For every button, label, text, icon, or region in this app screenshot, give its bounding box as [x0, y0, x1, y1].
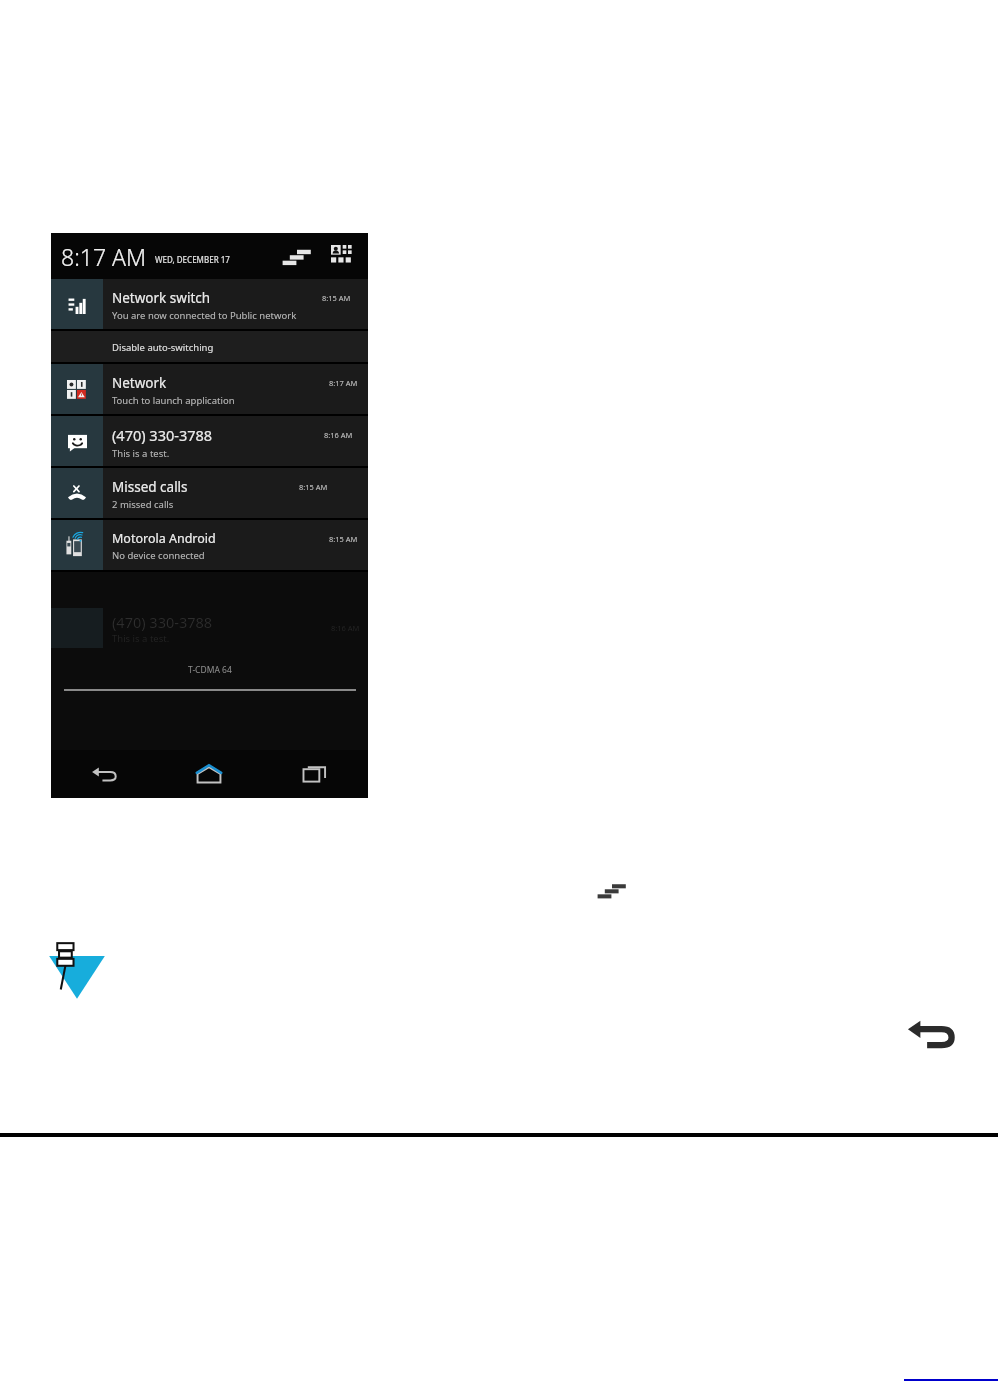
staticText: 8:16 AM [331, 623, 360, 633]
staticText: 8:15 AM [329, 534, 358, 544]
button[interactable]: (470) 330-3788 [51, 416, 368, 468]
button[interactable]: Disable auto-switching [51, 331, 368, 364]
button[interactable]: Home [156, 750, 262, 798]
staticText: 8:15 AM [299, 482, 328, 492]
staticText: Network switch [112, 289, 211, 307]
staticText: WED, DECEMBER 17 [155, 254, 230, 265]
button[interactable]: Back [51, 750, 156, 798]
staticText: (470) 330-3788 [112, 612, 213, 632]
staticText: 2 missed calls [112, 498, 174, 511]
staticText: 8:17 AM [329, 378, 358, 388]
staticText: (470) 330-3788 [112, 425, 213, 445]
button[interactable]: Network Services Client is ru [51, 364, 368, 416]
staticText: 8:17 AM [61, 241, 147, 272]
staticText: Network Services Client is ru [112, 374, 218, 392]
button[interactable]: Motorola Android eXtensions [51, 520, 368, 572]
staticText: 8:15 AM [322, 293, 351, 303]
button[interactable]: Quick settings [328, 242, 356, 270]
staticText: Motorola Android eXtensions [112, 530, 218, 547]
staticText: Touch to launch application [112, 394, 235, 407]
staticText: Missed calls [112, 478, 188, 496]
staticText: 8:16 AM [324, 430, 353, 440]
button[interactable]: Network switch [51, 279, 368, 331]
button[interactable]: Missed calls [51, 468, 368, 520]
button[interactable]: Recent apps [262, 750, 368, 798]
staticText: This is a test. [112, 632, 170, 645]
staticText: You are now connected to Public network [112, 309, 297, 322]
staticText: Disable auto-switching [112, 341, 214, 354]
button[interactable]: Clear all notifications [282, 243, 312, 269]
staticText: This is a test. [112, 447, 170, 460]
staticText: T-CDMA 64 [188, 664, 232, 676]
staticText: No device connected [112, 549, 205, 562]
